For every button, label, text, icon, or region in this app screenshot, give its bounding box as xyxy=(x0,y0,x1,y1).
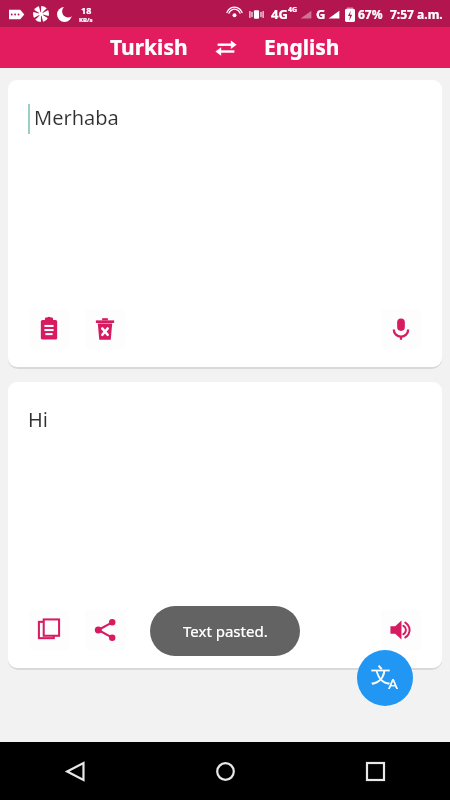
button[interactable]: English xyxy=(258,29,346,66)
button[interactable]: Share translation xyxy=(85,610,125,650)
button[interactable]: Home xyxy=(150,742,300,800)
staticText: 18 xyxy=(81,4,92,16)
staticText: Merhaba xyxy=(34,104,119,131)
button[interactable]: Voice input xyxy=(381,309,421,349)
staticText: 67% xyxy=(358,6,383,22)
staticText: Text pasted. xyxy=(183,621,268,641)
button[interactable]: Back xyxy=(0,742,150,800)
staticText: KB/s xyxy=(79,16,93,24)
button[interactable]: Swap languages xyxy=(210,32,242,64)
staticText: 4G xyxy=(271,5,288,23)
staticText: 文 xyxy=(371,663,391,688)
staticText: English xyxy=(264,33,340,62)
staticText: 7:57 a.m. xyxy=(390,6,443,22)
button[interactable]: Speak translation xyxy=(381,610,421,650)
staticText: A xyxy=(388,673,398,693)
staticText: G xyxy=(316,5,326,23)
button[interactable]: Clear text xyxy=(85,309,125,349)
button[interactable]: Hi xyxy=(8,382,442,668)
button[interactable]: Turkish xyxy=(104,29,194,66)
staticText: Turkish xyxy=(110,33,188,62)
button[interactable]: Copy translation xyxy=(29,610,69,650)
staticText: Hi xyxy=(28,406,48,433)
button[interactable]: Recent apps xyxy=(300,742,450,800)
button[interactable]: Open Google Translate xyxy=(357,650,413,706)
staticText: 4G xyxy=(288,5,298,15)
button[interactable]: Paste from clipboard xyxy=(29,309,69,349)
button[interactable]: Merhaba xyxy=(8,80,442,367)
